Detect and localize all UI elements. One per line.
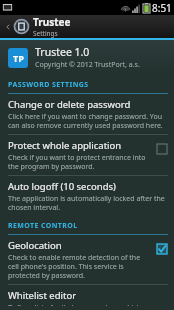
staticText: Click here if you want to change passwor…	[8, 112, 170, 130]
staticText: PASSWORD SETTINGS	[8, 80, 89, 90]
button[interactable]: TP	[0, 40, 174, 75]
button[interactable]: Auto logoff (10 seconds)	[0, 176, 174, 216]
button[interactable]: Protect whole application	[0, 135, 174, 175]
staticText: Whitelist editor	[8, 289, 77, 302]
staticText: REMOTE CONTROL	[8, 221, 78, 231]
staticText: TP	[13, 52, 24, 64]
staticText: Auto logoff (10 seconds)	[8, 180, 116, 193]
staticText: Check if you want to protect entrance in…	[8, 153, 150, 171]
button[interactable]: Protect whole application	[154, 141, 170, 157]
staticText: Change or delete password	[8, 98, 131, 111]
button[interactable]: Whitelist editor	[0, 285, 174, 310]
staticText: 8:51	[152, 1, 172, 15]
staticText: Settings	[33, 29, 58, 38]
button[interactable]: Navigate up	[2, 15, 13, 38]
button[interactable]: Geolocation	[154, 241, 170, 257]
button[interactable]: Geolocation	[0, 235, 174, 284]
button[interactable]: Change or delete password	[0, 94, 174, 134]
staticText: Copyright © 2012 TrustPort, a.s.	[35, 60, 140, 70]
staticText: The application is automatically locked …	[8, 194, 170, 212]
staticText: Protect whole application	[8, 139, 122, 152]
staticText: Check to enable remote detection of the …	[8, 253, 150, 280]
staticText: Geolocation	[8, 239, 62, 252]
staticText: Trustee	[33, 15, 71, 29]
staticText: Defines list of cell phone numbers which…	[8, 303, 170, 306]
staticText: Trustee 1.0	[35, 45, 90, 59]
